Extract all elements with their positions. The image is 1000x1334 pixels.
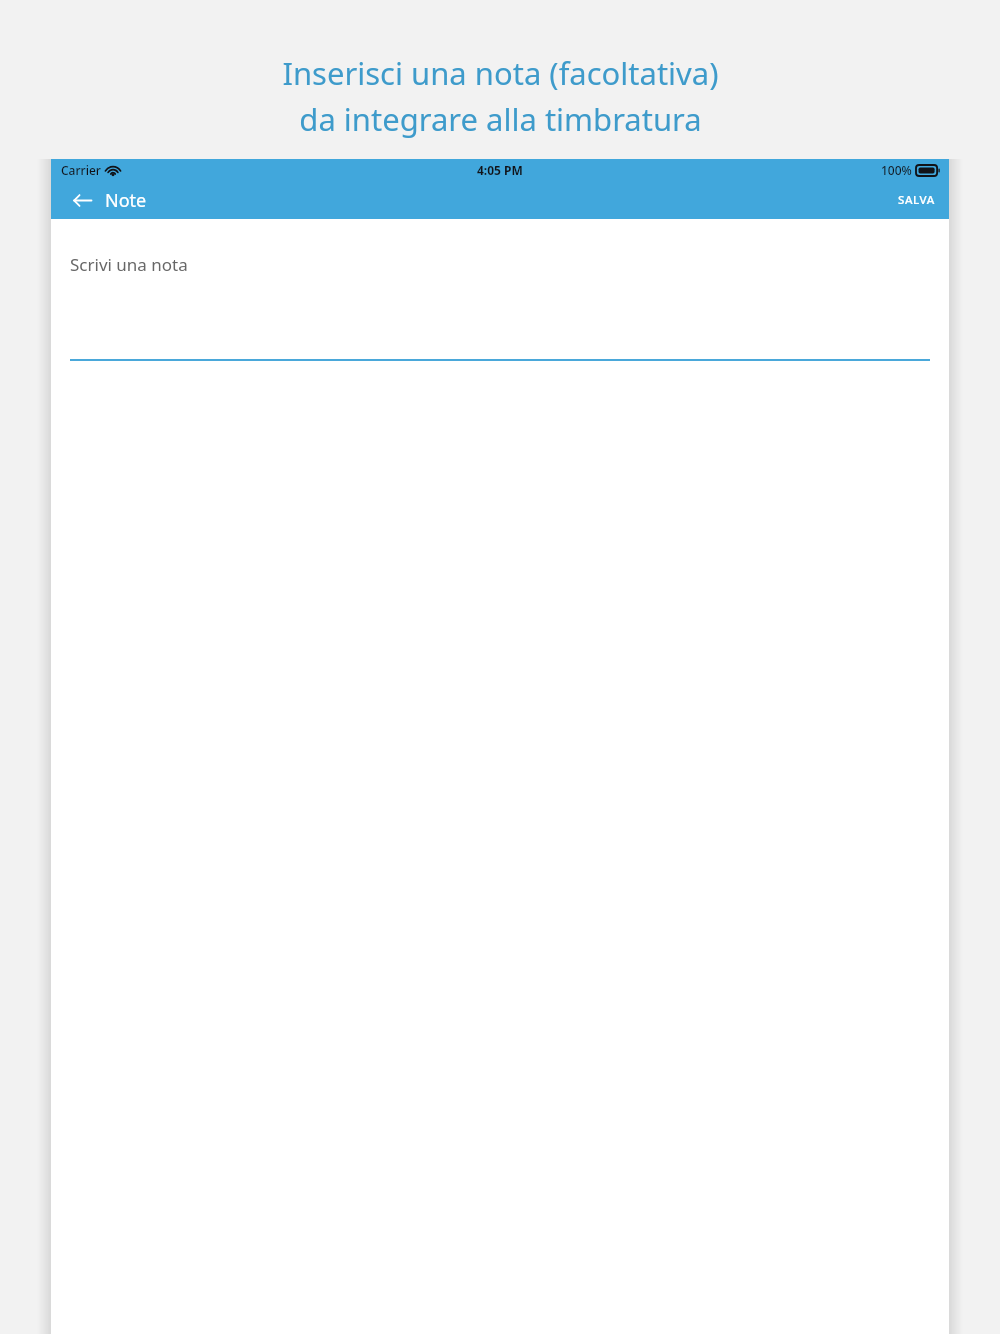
staticText: da integrare alla timbratura <box>299 98 702 140</box>
staticText: 4:05 PM <box>477 162 523 178</box>
other: Back <box>69 187 95 213</box>
button[interactable]: Back <box>51 181 159 219</box>
button[interactable]: Scrivi una nota <box>70 243 930 361</box>
staticText: Scrivi una nota <box>70 253 188 276</box>
staticText: Note <box>105 188 147 213</box>
staticText: 100% <box>881 162 912 178</box>
button[interactable]: SALVA <box>884 184 949 216</box>
staticText: Inserisci una nota (facoltativa) <box>282 52 719 94</box>
staticText: SALVA <box>898 192 935 208</box>
staticText: Carrier <box>61 162 101 178</box>
